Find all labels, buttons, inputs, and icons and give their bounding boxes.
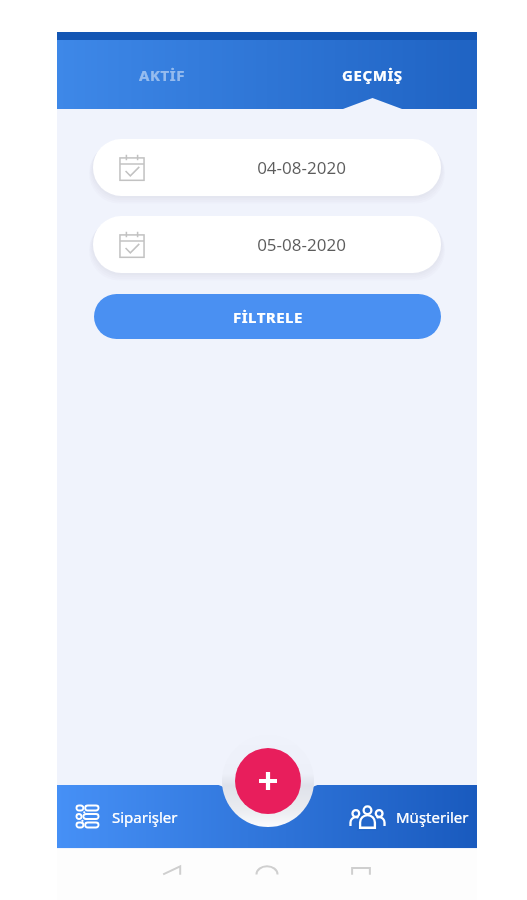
staticText: 05-08-2020 — [257, 233, 346, 256]
button[interactable]: AKTİF — [57, 40, 267, 109]
staticText: 04-08-2020 — [257, 156, 346, 179]
staticText: GEÇMİŞ — [342, 65, 403, 85]
button[interactable]: Add order — [235, 748, 301, 814]
button[interactable]: Siparişler — [57, 785, 267, 848]
staticText: Siparişler — [112, 807, 178, 827]
button[interactable]: 04-08-2020 — [93, 139, 441, 196]
button[interactable]: GEÇMİŞ — [267, 40, 477, 109]
staticText: FİLTRELE — [233, 307, 303, 327]
button[interactable]: Home — [245, 849, 289, 893]
button[interactable]: Müşteriler — [267, 785, 477, 848]
staticText: AKTİF — [139, 65, 186, 85]
button[interactable]: Recent apps — [339, 849, 383, 893]
button[interactable]: FİLTRELE — [94, 294, 441, 339]
staticText: Müşteriler — [396, 807, 469, 827]
button[interactable]: 05-08-2020 — [93, 216, 441, 273]
button[interactable]: Back — [151, 849, 195, 893]
